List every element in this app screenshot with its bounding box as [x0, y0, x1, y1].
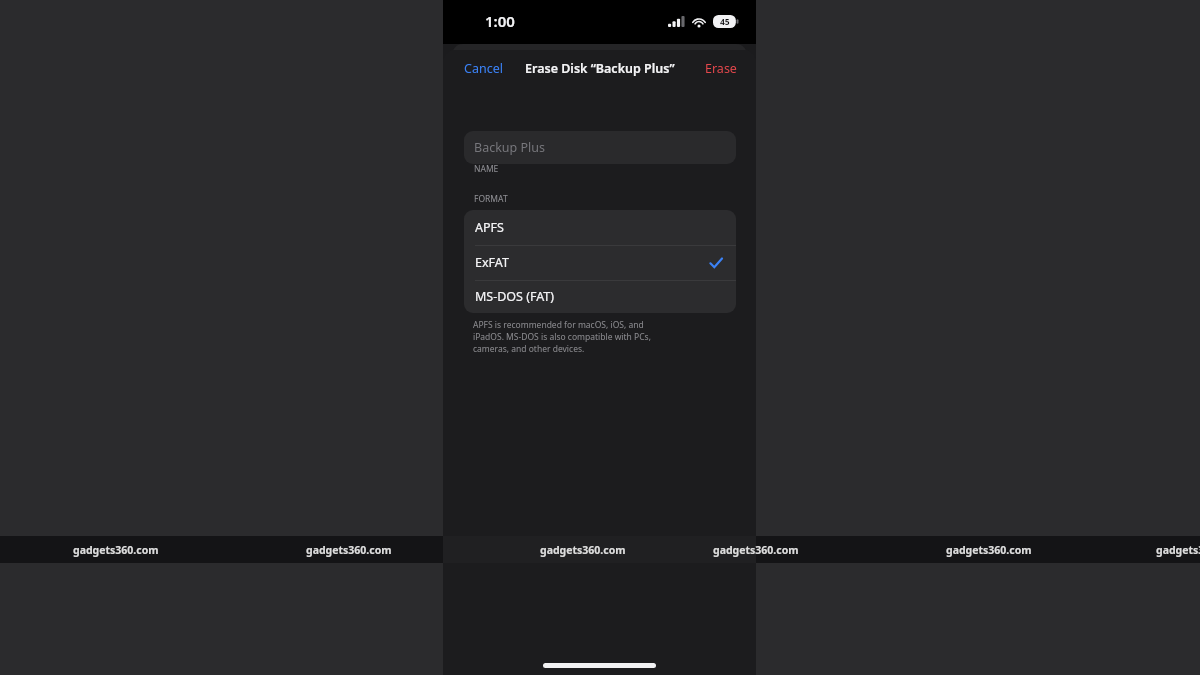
other: Selected: [709, 256, 723, 270]
staticText: gadgets360.com: [946, 543, 1032, 557]
staticText: NAME: [474, 163, 499, 175]
staticText: gadgets360.com: [713, 543, 799, 557]
button[interactable]: APFS: [464, 210, 736, 245]
staticText: Backup Plus: [474, 139, 545, 156]
staticText: 1:00: [485, 11, 515, 31]
staticText: gadgets360.com: [540, 543, 626, 557]
staticText: Erase: [705, 60, 737, 77]
button[interactable]: Cancel: [443, 53, 524, 84]
button[interactable]: Erase: [686, 53, 756, 84]
staticText: 45: [720, 16, 730, 28]
staticText: APFS: [475, 219, 504, 236]
staticText: Cancel: [464, 60, 503, 77]
staticText: ExFAT: [475, 254, 509, 271]
staticText: APFS is recommended for macOS, iOS, and …: [473, 319, 703, 355]
staticText: gadgets360.com: [73, 543, 159, 557]
button[interactable]: ExFAT: [464, 245, 736, 280]
staticText: gadgets360.com: [306, 543, 392, 557]
button[interactable]: MS-DOS (FAT): [464, 280, 736, 313]
button[interactable]: Backup Plus: [464, 131, 736, 164]
staticText: FORMAT: [474, 193, 508, 205]
staticText: MS-DOS (FAT): [475, 288, 555, 305]
staticText: gadgets360.com: [1156, 543, 1200, 557]
staticText: Erase Disk “Backup Plus”: [525, 60, 675, 77]
